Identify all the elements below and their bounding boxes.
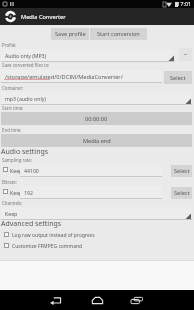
button[interactable]: Checkbox <box>3 167 8 172</box>
staticText: Advanced settings <box>1 219 62 229</box>
staticText: Save profile <box>55 30 86 38</box>
staticText: Audio only (MP3) <box>5 52 47 59</box>
staticText: 192 <box>24 189 33 196</box>
staticText: 44100 <box>24 167 39 174</box>
staticText: 00:00:00 <box>85 115 108 123</box>
button[interactable]: Checkbox <box>4 243 9 248</box>
staticText: Select <box>170 74 186 82</box>
button[interactable]: Select <box>171 165 192 177</box>
button[interactable]: Select <box>171 187 192 199</box>
button[interactable]: Back <box>44 290 68 310</box>
staticText: Save converted files to: <box>2 62 50 68</box>
staticText: Customize FFMPEG command <box>12 243 83 250</box>
button[interactable]: Select <box>164 71 192 84</box>
button[interactable]: Checkbox <box>3 189 8 194</box>
staticText: Start time: <box>2 105 24 111</box>
staticText: Profile: <box>2 42 17 48</box>
button[interactable]: Audio only (MP3) <box>1 49 175 62</box>
staticText: /storage/emulated/0/DCIM/MediaConverter/ <box>5 73 123 81</box>
button[interactable]: mp3 (audio only) <box>1 92 192 105</box>
staticText: Select <box>174 167 190 175</box>
button[interactable]: /storage/emulated/0/DCIM/MediaConverter/ <box>1 70 162 83</box>
staticText: Keep <box>10 189 23 196</box>
button[interactable]: 00:00:00 <box>1 112 192 125</box>
button[interactable]: Save profile <box>51 28 89 40</box>
button[interactable]: Checkbox <box>4 232 9 237</box>
staticText: Container: <box>2 85 24 91</box>
staticText: Start conversion <box>97 30 140 38</box>
button[interactable]: Start conversion <box>90 28 147 40</box>
button[interactable]: Profile options <box>179 48 192 61</box>
button[interactable]: Media end <box>1 134 192 147</box>
staticText: Bitrate: <box>2 179 17 185</box>
staticText: Media end <box>83 137 111 145</box>
staticText: Keep <box>10 167 23 174</box>
staticText: Log raw output instead of progress <box>12 232 95 239</box>
staticText: 17:01 <box>177 0 192 8</box>
staticText: Keep <box>5 210 18 217</box>
button[interactable]: Keep <box>1 207 192 220</box>
staticText: mp3 (audio only) <box>5 95 46 102</box>
button[interactable]: Recent apps <box>125 290 149 310</box>
staticText: Media Converter <box>21 13 66 21</box>
button[interactable]: 44100 <box>20 164 162 177</box>
staticText: Audio settings <box>1 147 49 157</box>
button[interactable]: Home <box>85 290 109 310</box>
staticText: Sampling rate: <box>2 157 32 163</box>
staticText: Select <box>174 189 190 197</box>
staticText: End time: <box>2 127 22 133</box>
button[interactable]: 192 <box>20 186 162 199</box>
staticText: Channels: <box>2 200 23 206</box>
